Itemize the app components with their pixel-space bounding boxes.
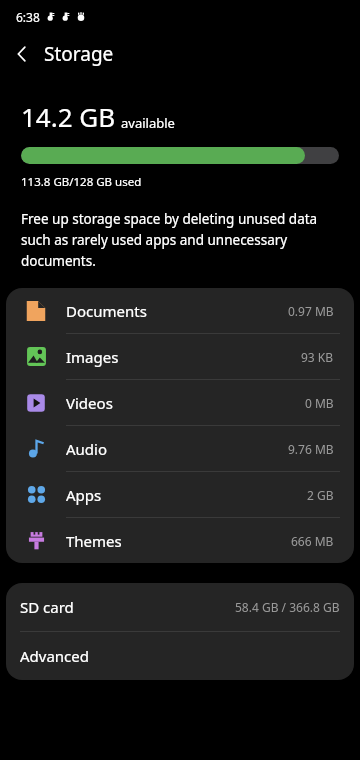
staticText: Advanced: [20, 646, 340, 666]
staticText: Documents: [66, 301, 288, 321]
staticText: Storage: [44, 41, 114, 67]
button[interactable]: Apps: [6, 472, 354, 518]
button[interactable]: Themes: [6, 518, 354, 563]
button[interactable]: Advanced: [6, 632, 354, 680]
staticText: Videos: [66, 393, 305, 413]
staticText: 14.2 GB: [21, 99, 116, 134]
staticText: Themes: [66, 531, 291, 551]
staticText: 666 MB: [291, 533, 334, 549]
staticText: 0 MB: [305, 395, 334, 411]
staticText: Audio: [66, 439, 288, 459]
button[interactable]: Back: [0, 34, 44, 74]
button[interactable]: Videos: [6, 380, 354, 426]
button[interactable]: Documents: [6, 288, 354, 334]
staticText: 2 GB: [307, 487, 334, 503]
staticText: 93 KB: [301, 349, 334, 365]
staticText: 0.97 MB: [288, 303, 334, 319]
staticText: 58.4 GB / 366.8 GB: [235, 599, 340, 615]
button[interactable]: Images: [6, 334, 354, 380]
staticText: 9.76 MB: [288, 441, 334, 457]
staticText: Free up storage space by deleting unused…: [21, 210, 332, 270]
staticText: 6:38: [16, 9, 40, 25]
button[interactable]: Audio: [6, 426, 354, 472]
staticText: Apps: [66, 485, 307, 505]
staticText: Images: [66, 347, 301, 367]
staticText: available: [121, 114, 175, 132]
staticText: SD card: [20, 597, 235, 617]
staticText: 113.8 GB/128 GB used: [21, 174, 142, 190]
button[interactable]: SD card: [6, 583, 354, 632]
